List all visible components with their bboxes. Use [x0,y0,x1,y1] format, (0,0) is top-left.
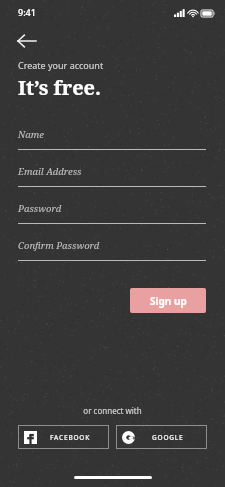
staticText: Confirm Password [18,239,100,252]
staticText: Name [18,128,44,141]
button[interactable]: FACEBOOK [18,425,109,449]
button[interactable]: Confirm Password [18,239,206,261]
staticText: It’s free. [18,74,101,101]
button[interactable]: Back [12,28,42,54]
staticText: GOOGLE [152,433,184,442]
button[interactable]: Sign up [130,288,206,313]
button[interactable]: Password [18,202,206,224]
button[interactable]: Name [18,128,206,150]
staticText: FACEBOOK [50,433,91,442]
staticText: Password [18,202,62,215]
button[interactable]: GOOGLE [116,425,207,449]
staticText: Create your account [18,59,104,71]
staticText: or connect with [83,405,142,416]
staticText: 9:41 [18,6,36,18]
button[interactable]: Email Address [18,165,206,187]
staticText: Email Address [18,165,82,178]
staticText: Sign up [150,294,187,308]
